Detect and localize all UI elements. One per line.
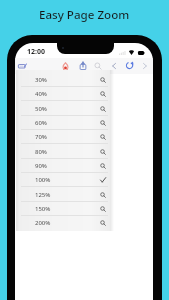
- button[interactable]: 150%: [16, 202, 110, 216]
- staticText: 50%: [35, 105, 47, 113]
- button[interactable]: 200%: [16, 216, 110, 230]
- staticText: 200%: [35, 219, 51, 227]
- button[interactable]: Reader: [62, 62, 69, 71]
- staticText: 150%: [35, 205, 51, 213]
- staticText: 80%: [35, 148, 47, 156]
- button[interactable]: 60%: [16, 116, 110, 130]
- staticText: 90%: [35, 162, 47, 170]
- button[interactable]: 40%: [16, 87, 110, 101]
- staticText: 60%: [35, 119, 47, 127]
- button[interactable]: 30%: [16, 73, 110, 87]
- staticText: Easy Page Zoom: [39, 7, 130, 23]
- staticText: 100%: [35, 176, 51, 184]
- button[interactable]: 70%: [16, 130, 110, 144]
- staticText: 70%: [35, 133, 47, 141]
- staticText: 12:00: [27, 47, 45, 57]
- button[interactable]: 125%: [16, 188, 110, 202]
- button[interactable]: 80%: [16, 145, 110, 159]
- button[interactable]: Reload: [125, 61, 134, 70]
- button[interactable]: 50%: [16, 102, 110, 116]
- button[interactable]: 100%: [16, 173, 110, 187]
- button[interactable]: Search: [94, 62, 102, 70]
- button[interactable]: Share: [79, 61, 87, 70]
- staticText: 40%: [35, 90, 47, 98]
- button[interactable]: Tabs: [18, 62, 27, 70]
- staticText: 125%: [35, 191, 51, 199]
- button[interactable]: Back: [111, 62, 117, 70]
- button[interactable]: Forward: [142, 62, 148, 70]
- button[interactable]: 90%: [16, 159, 110, 173]
- staticText: 30%: [35, 76, 47, 84]
